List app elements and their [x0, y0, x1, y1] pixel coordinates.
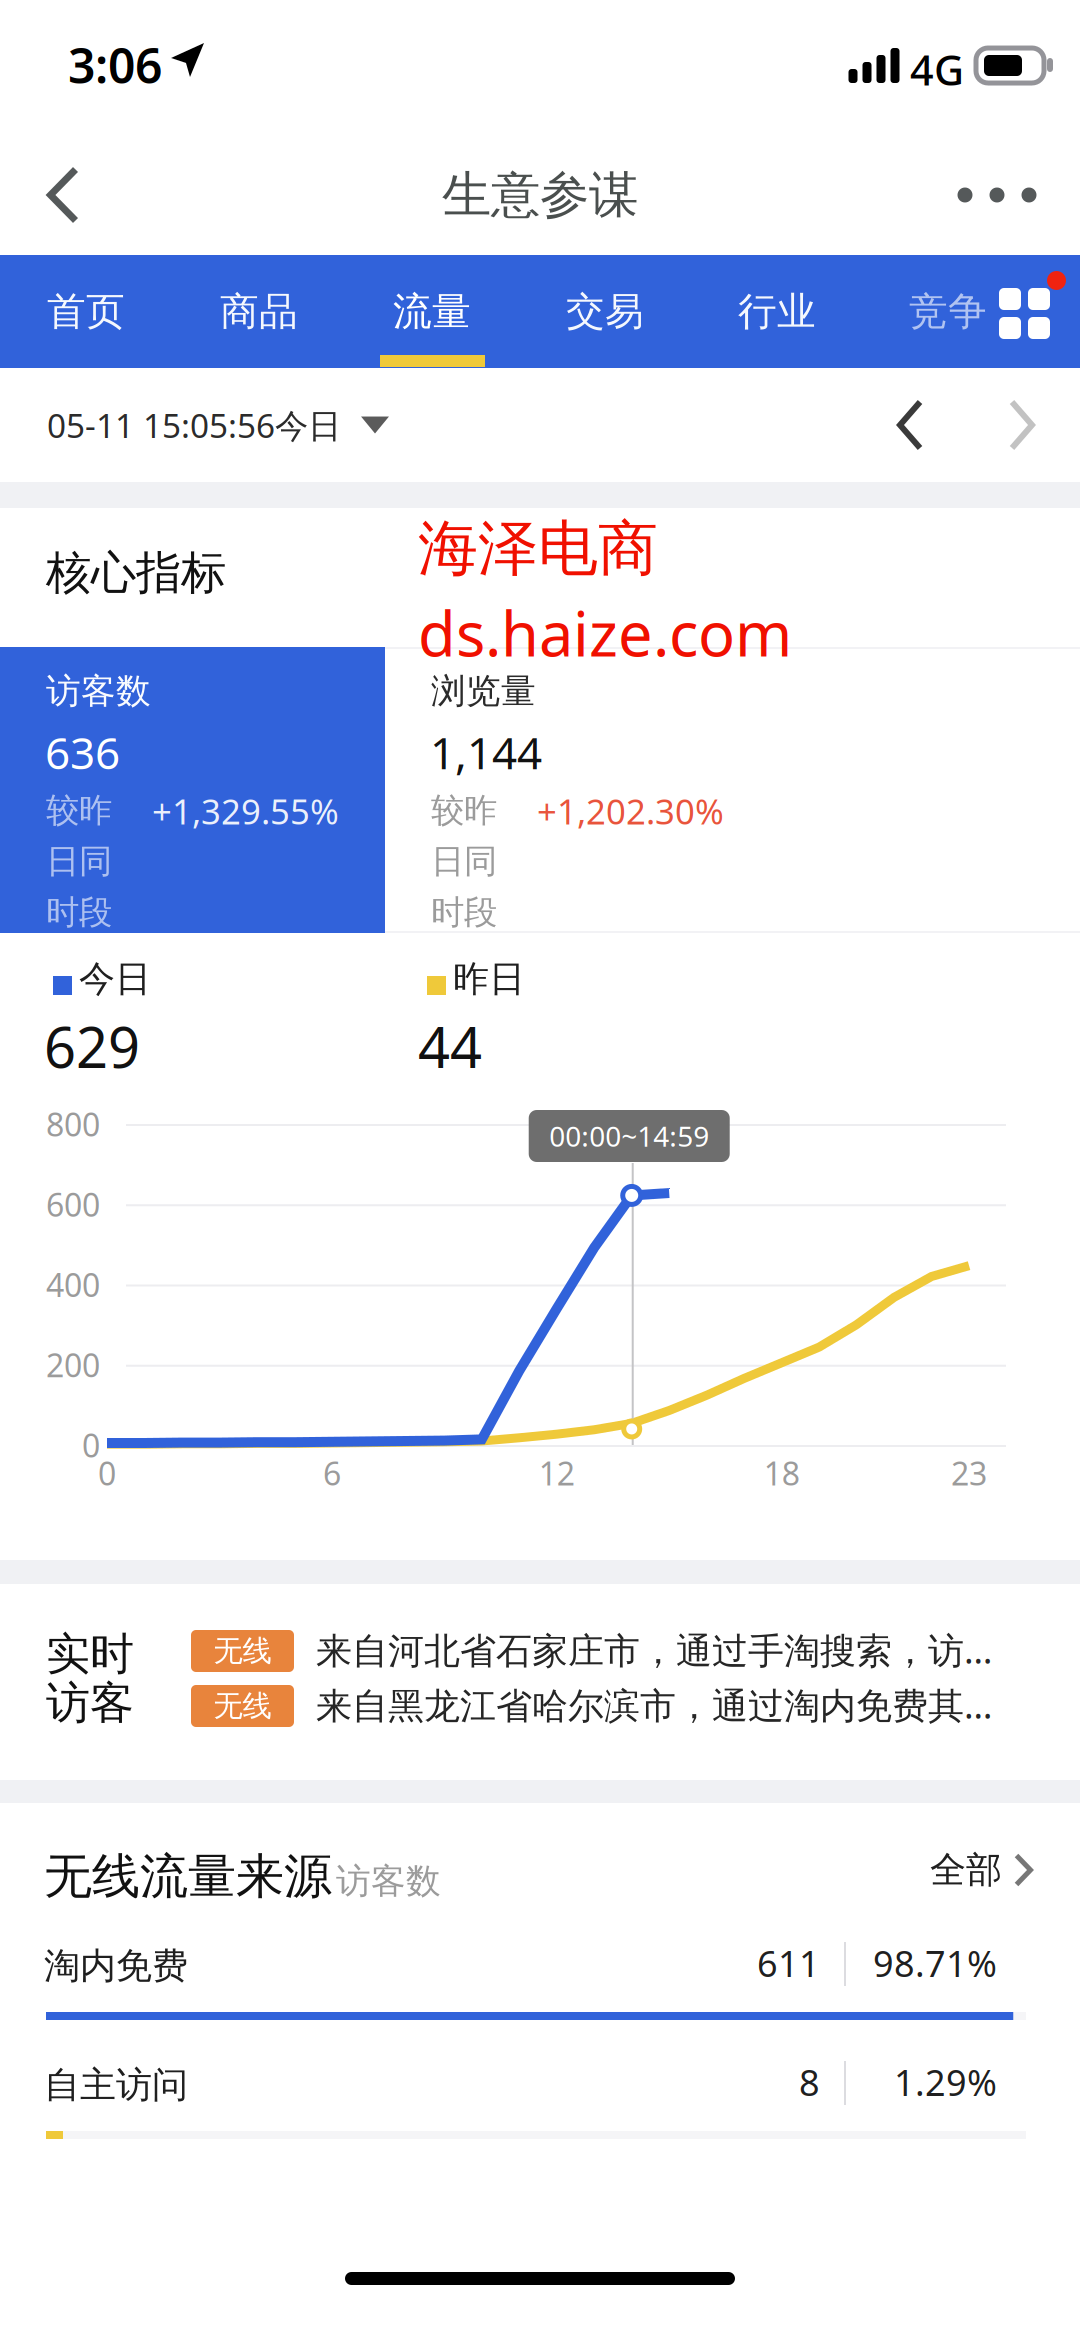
staticText: 浏览量 — [431, 670, 536, 713]
staticText: 实时 — [46, 1627, 134, 1681]
staticText: +1,329.55% — [152, 788, 339, 834]
staticText: 00:00~14:59 — [549, 1117, 709, 1155]
staticText: ds.haize.com — [418, 592, 792, 673]
staticText: 12 — [539, 1452, 575, 1494]
staticText: 访客数 — [46, 670, 151, 713]
staticText: 0 — [82, 1424, 100, 1466]
button[interactable]: 自主访问 — [0, 2035, 1080, 2154]
staticText: 今日 — [79, 957, 151, 1001]
staticText: 1,144 — [430, 723, 542, 781]
button[interactable]: 无线 — [191, 1624, 1051, 1679]
staticText: 较昨 — [431, 790, 497, 831]
staticText: 1.29% — [894, 2058, 997, 2106]
button[interactable]: 流量 — [357, 255, 507, 368]
button[interactable]: 竞争 — [873, 255, 1023, 368]
button[interactable]: Previous period — [854, 368, 966, 482]
staticText: 来自黑龙江省哈尔滨市，通过淘内免费其… — [316, 1681, 992, 1729]
staticText: 较昨 — [46, 790, 112, 831]
staticText: 核心指标 — [46, 545, 226, 601]
staticText: +1,202.30% — [537, 788, 724, 834]
button[interactable]: 商品 — [184, 255, 334, 368]
button[interactable]: All modules — [996, 255, 1078, 368]
button[interactable]: 浏览量 — [385, 647, 1080, 933]
staticText: 8 — [799, 2058, 820, 2106]
button[interactable]: More options — [924, 135, 1070, 255]
staticText: 4G — [910, 42, 964, 97]
staticText: 来自河北省石家庄市，通过手淘搜索，访… — [316, 1626, 992, 1674]
staticText: 商品 — [220, 288, 298, 335]
button[interactable]: 交易 — [530, 255, 680, 368]
staticText: 日同 — [46, 841, 112, 882]
button[interactable]: 无线 — [191, 1679, 1051, 1734]
staticText: 全部 — [930, 1848, 1002, 1892]
staticText: 无线流量来源 — [44, 1847, 332, 1906]
staticText: 昨日 — [453, 957, 525, 1001]
button[interactable]: 首页 — [11, 255, 161, 368]
staticText: 0 — [98, 1452, 116, 1494]
button[interactable]: 淘内免费 — [0, 1916, 1080, 2035]
staticText: 6 — [323, 1452, 341, 1494]
staticText: 时段 — [46, 892, 112, 933]
staticText: 首页 — [47, 288, 125, 335]
staticText: 44 — [418, 1009, 482, 1083]
staticText: 无线 — [213, 1633, 271, 1669]
staticText: 生意参谋 — [442, 165, 638, 225]
staticText: 海泽电商 — [418, 512, 658, 586]
staticText: 无线 — [213, 1688, 271, 1724]
staticText: 行业 — [738, 288, 816, 335]
staticText: 3:06 — [68, 33, 162, 97]
staticText: 05-11 15:05:56今日 — [47, 403, 341, 447]
staticText: 636 — [45, 723, 120, 781]
button[interactable]: 行业 — [702, 255, 852, 368]
staticText: 访客 — [46, 1676, 134, 1730]
button[interactable]: 访客数 — [0, 647, 385, 933]
staticText: 400 — [46, 1263, 100, 1306]
staticText: 交易 — [566, 288, 644, 335]
staticText: 日同 — [431, 841, 497, 882]
staticText: 98.71% — [873, 1939, 997, 1987]
staticText: 时段 — [431, 892, 497, 933]
staticText: 竞争 — [909, 288, 987, 335]
staticText: 淘内免费 — [44, 1944, 188, 1988]
staticText: 611 — [757, 1939, 820, 1987]
staticText: 流量 — [393, 288, 471, 335]
button[interactable]: 05-11 15:05:56今日 — [0, 368, 419, 482]
staticText: 200 — [46, 1343, 100, 1386]
staticText: 629 — [44, 1009, 140, 1083]
button[interactable]: 全部 — [930, 1803, 1080, 1916]
button[interactable]: Back — [0, 135, 126, 255]
staticText: 800 — [46, 1103, 100, 1145]
staticText: 600 — [46, 1183, 100, 1225]
staticText: 自主访问 — [44, 2063, 188, 2107]
staticText: 访客数 — [336, 1860, 441, 1903]
staticText: 18 — [764, 1452, 800, 1494]
staticText: 23 — [951, 1452, 987, 1494]
button[interactable]: Next period — [966, 368, 1078, 482]
